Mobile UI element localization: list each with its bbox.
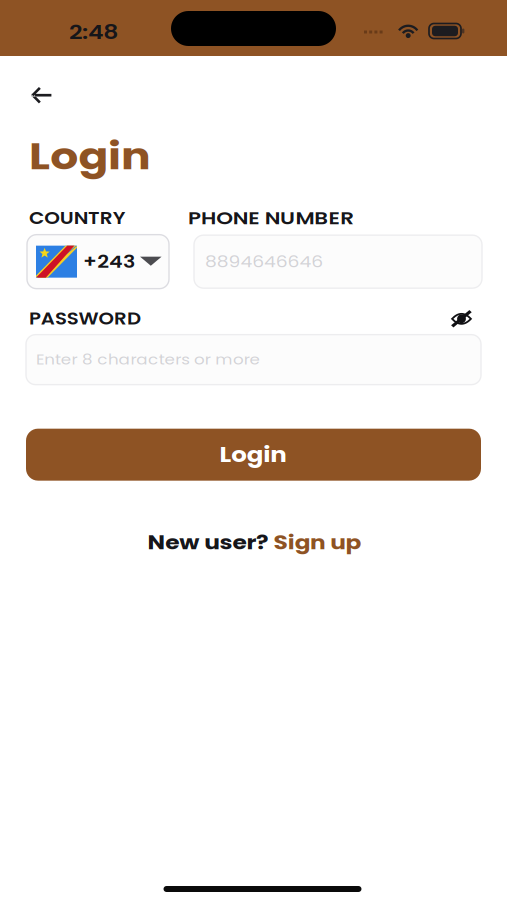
staticText: New user? (147, 529, 250, 556)
staticText: +243 (83, 249, 127, 274)
staticText: PASSWORD (29, 307, 124, 330)
button[interactable]: Show password (440, 307, 481, 331)
button[interactable]: Login (26, 429, 481, 481)
staticText: Login (29, 130, 132, 182)
staticText: Sign up (273, 529, 347, 556)
staticText: PHONE NUMBER (188, 205, 329, 231)
staticText: Enter 8 characters or more (36, 350, 226, 370)
button[interactable]: Back (0, 74, 66, 117)
button[interactable]: Country code +243 (27, 235, 169, 289)
staticText: COUNTRY (29, 206, 111, 230)
staticText: Login (219, 440, 276, 469)
button[interactable]: Sign up (264, 529, 359, 556)
staticText: 8894646646 (205, 250, 305, 273)
staticText: 2:48 (69, 18, 111, 46)
